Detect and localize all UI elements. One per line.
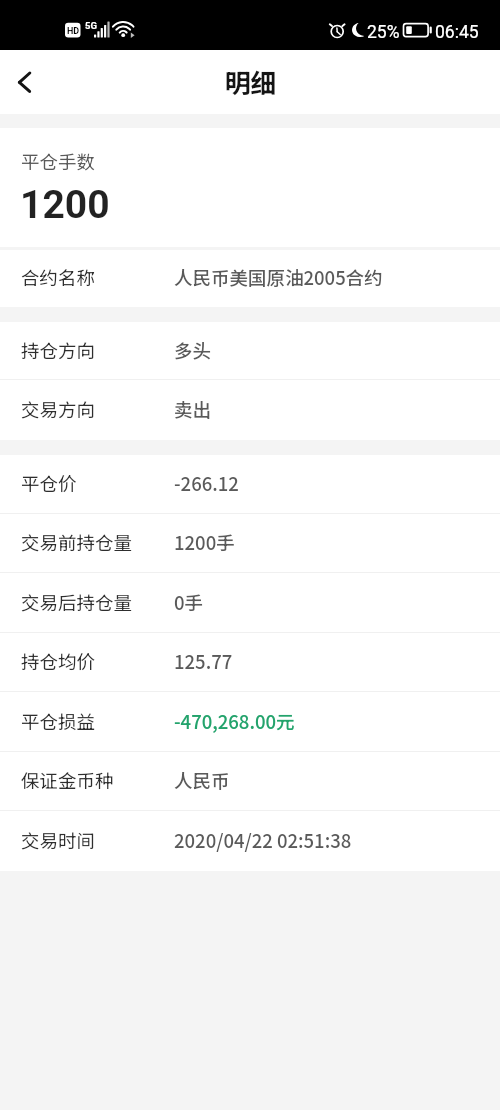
staticText: 保证金币种 [21,767,114,794]
button[interactable]: Back [0,50,48,98]
staticText: 平仓手数 [21,148,96,175]
staticText: 交易后持仓量 [21,589,133,616]
button[interactable]: 持仓方向 [0,322,500,380]
staticText: 2020/04/22 02:51:38 [174,827,352,854]
button[interactable]: 平仓价 [0,455,500,514]
staticText: 明细 [224,63,277,101]
staticText: 5G [85,20,97,31]
staticText: 人民币美国原油2005合约 [174,264,383,291]
staticText: 1200手 [174,529,235,556]
staticText: 卖出 [174,396,212,423]
button[interactable]: 合约名称 [0,250,500,307]
staticText: 人民币 [174,767,230,794]
staticText: 交易方向 [21,396,96,423]
staticText: HD [67,26,79,37]
staticText: 1200 [20,182,110,228]
button[interactable]: 交易后持仓量 [0,573,500,633]
button[interactable]: 交易时间 [0,811,500,871]
button[interactable]: 平仓损益 [0,692,500,752]
button[interactable]: 持仓均价 [0,633,500,692]
staticText: 多头 [174,337,212,364]
staticText: 平仓价 [21,470,77,497]
staticText: 合约名称 [21,264,96,291]
staticText: 125.77 [174,648,233,675]
staticText: 交易时间 [21,827,96,854]
button[interactable]: 交易前持仓量 [0,514,500,573]
staticText: -470,268.00元 [174,708,295,735]
staticText: 06:45 [435,22,479,43]
staticText: 持仓方向 [21,337,96,364]
staticText: 平仓损益 [21,708,96,735]
staticText: 持仓均价 [21,648,96,675]
staticText: 25% [367,22,400,43]
button[interactable]: 交易方向 [0,380,500,440]
button[interactable]: 保证金币种 [0,752,500,811]
staticText: -266.12 [174,470,239,497]
staticText: 0手 [174,589,204,616]
staticText: 交易前持仓量 [21,529,133,556]
